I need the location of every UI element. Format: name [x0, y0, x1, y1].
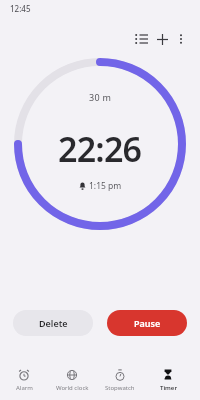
staticText: Timer: [160, 384, 177, 392]
button[interactable]: Delete: [13, 310, 93, 336]
staticText: 12:45: [10, 3, 31, 14]
button[interactable]: World clock: [48, 366, 96, 392]
button[interactable]: Alarm: [0, 366, 48, 392]
button[interactable]: Pause: [107, 310, 187, 336]
staticText: Pause: [134, 317, 161, 329]
staticText: 30 m: [89, 91, 112, 103]
button[interactable]: [152, 29, 172, 49]
staticText: 22:26: [58, 126, 142, 172]
button[interactable]: [131, 29, 151, 49]
staticText: World clock: [56, 384, 89, 392]
button[interactable]: [171, 29, 191, 49]
staticText: Delete: [39, 317, 68, 329]
button[interactable]: Timer: [144, 366, 192, 392]
staticText: 1:15 pm: [89, 180, 122, 192]
staticText: Stopwatch: [105, 384, 135, 392]
staticText: Alarm: [16, 384, 33, 392]
button[interactable]: Stopwatch: [96, 366, 144, 392]
